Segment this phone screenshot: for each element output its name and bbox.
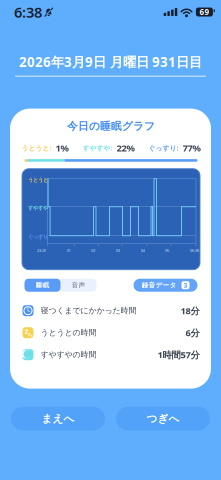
staticText: 06:38 <box>190 248 199 253</box>
staticText: 今日の睡眠グラフ <box>67 120 155 133</box>
staticText: z <box>28 330 31 337</box>
staticText: 3 <box>183 281 187 290</box>
staticText: 01 <box>67 248 71 253</box>
button[interactable]: まえへ <box>11 407 105 431</box>
staticText: 1時間57分 <box>157 348 199 361</box>
button[interactable]: すやすやの時間 <box>10 344 211 366</box>
staticText: すやすや: <box>82 143 112 152</box>
staticText: 04 <box>141 248 145 253</box>
staticText: 69 <box>199 7 209 17</box>
button[interactable]: 音声 <box>60 279 96 292</box>
button[interactable]: 睡眠 <box>24 279 60 292</box>
staticText: ぐっすり <box>28 234 48 240</box>
staticText: すやすや <box>28 205 48 211</box>
staticText: 77% <box>182 142 200 154</box>
staticText: 寝つくまでにかかった時間 <box>40 306 136 316</box>
staticText: 02 <box>91 248 95 253</box>
button[interactable]: z <box>10 322 211 344</box>
staticText: 1% <box>55 142 68 154</box>
staticText: 22% <box>116 142 134 154</box>
staticText: 6分 <box>185 326 199 339</box>
staticText: 音声 <box>71 281 85 289</box>
staticText: 23:20 <box>37 248 46 253</box>
button[interactable]: 録音データ <box>133 279 197 292</box>
staticText: 18分 <box>180 304 199 317</box>
staticText: うとうとの時間 <box>40 328 96 338</box>
staticText: ぐっすり: <box>148 143 178 152</box>
staticText: うとうと: <box>21 143 51 152</box>
staticText: うとうと <box>28 177 48 183</box>
button[interactable]: つぎへ <box>116 407 210 431</box>
staticText: 03 <box>116 248 120 253</box>
staticText: 睡眠 <box>35 281 49 289</box>
staticText: 6:38 <box>14 2 42 22</box>
staticText: すやすやの時間 <box>40 350 96 360</box>
staticText: z <box>31 332 33 338</box>
staticText: つぎへ <box>146 412 179 425</box>
staticText: z <box>24 326 28 337</box>
staticText: 05 <box>165 248 169 253</box>
button[interactable]: 寝つくまでにかかった時間 <box>10 300 211 322</box>
staticText: まえへ <box>41 412 74 425</box>
staticText: 2026年3月9日 月曜日 931日目 <box>19 53 202 71</box>
staticText: 録音データ <box>141 281 176 289</box>
